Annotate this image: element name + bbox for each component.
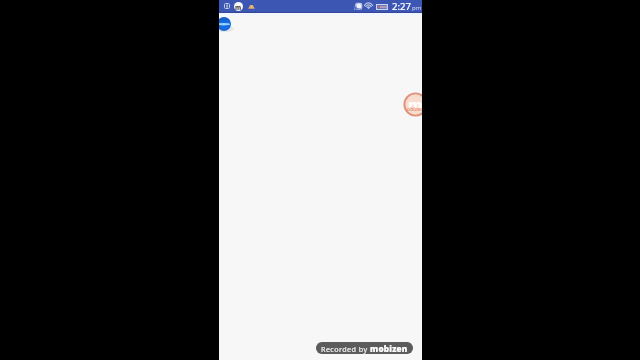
staticText: m (408, 94, 422, 114)
staticText: obizen (407, 106, 422, 113)
staticText: Recorded by (321, 344, 368, 354)
staticText: 2:27 (392, 0, 412, 13)
button[interactable]: Recorded by Mobizen (316, 342, 413, 354)
staticText: mobizen (370, 343, 408, 354)
staticText: pm (412, 4, 422, 12)
button[interactable]: Floating bubble (219, 17, 231, 31)
staticText: m (235, 3, 242, 11)
